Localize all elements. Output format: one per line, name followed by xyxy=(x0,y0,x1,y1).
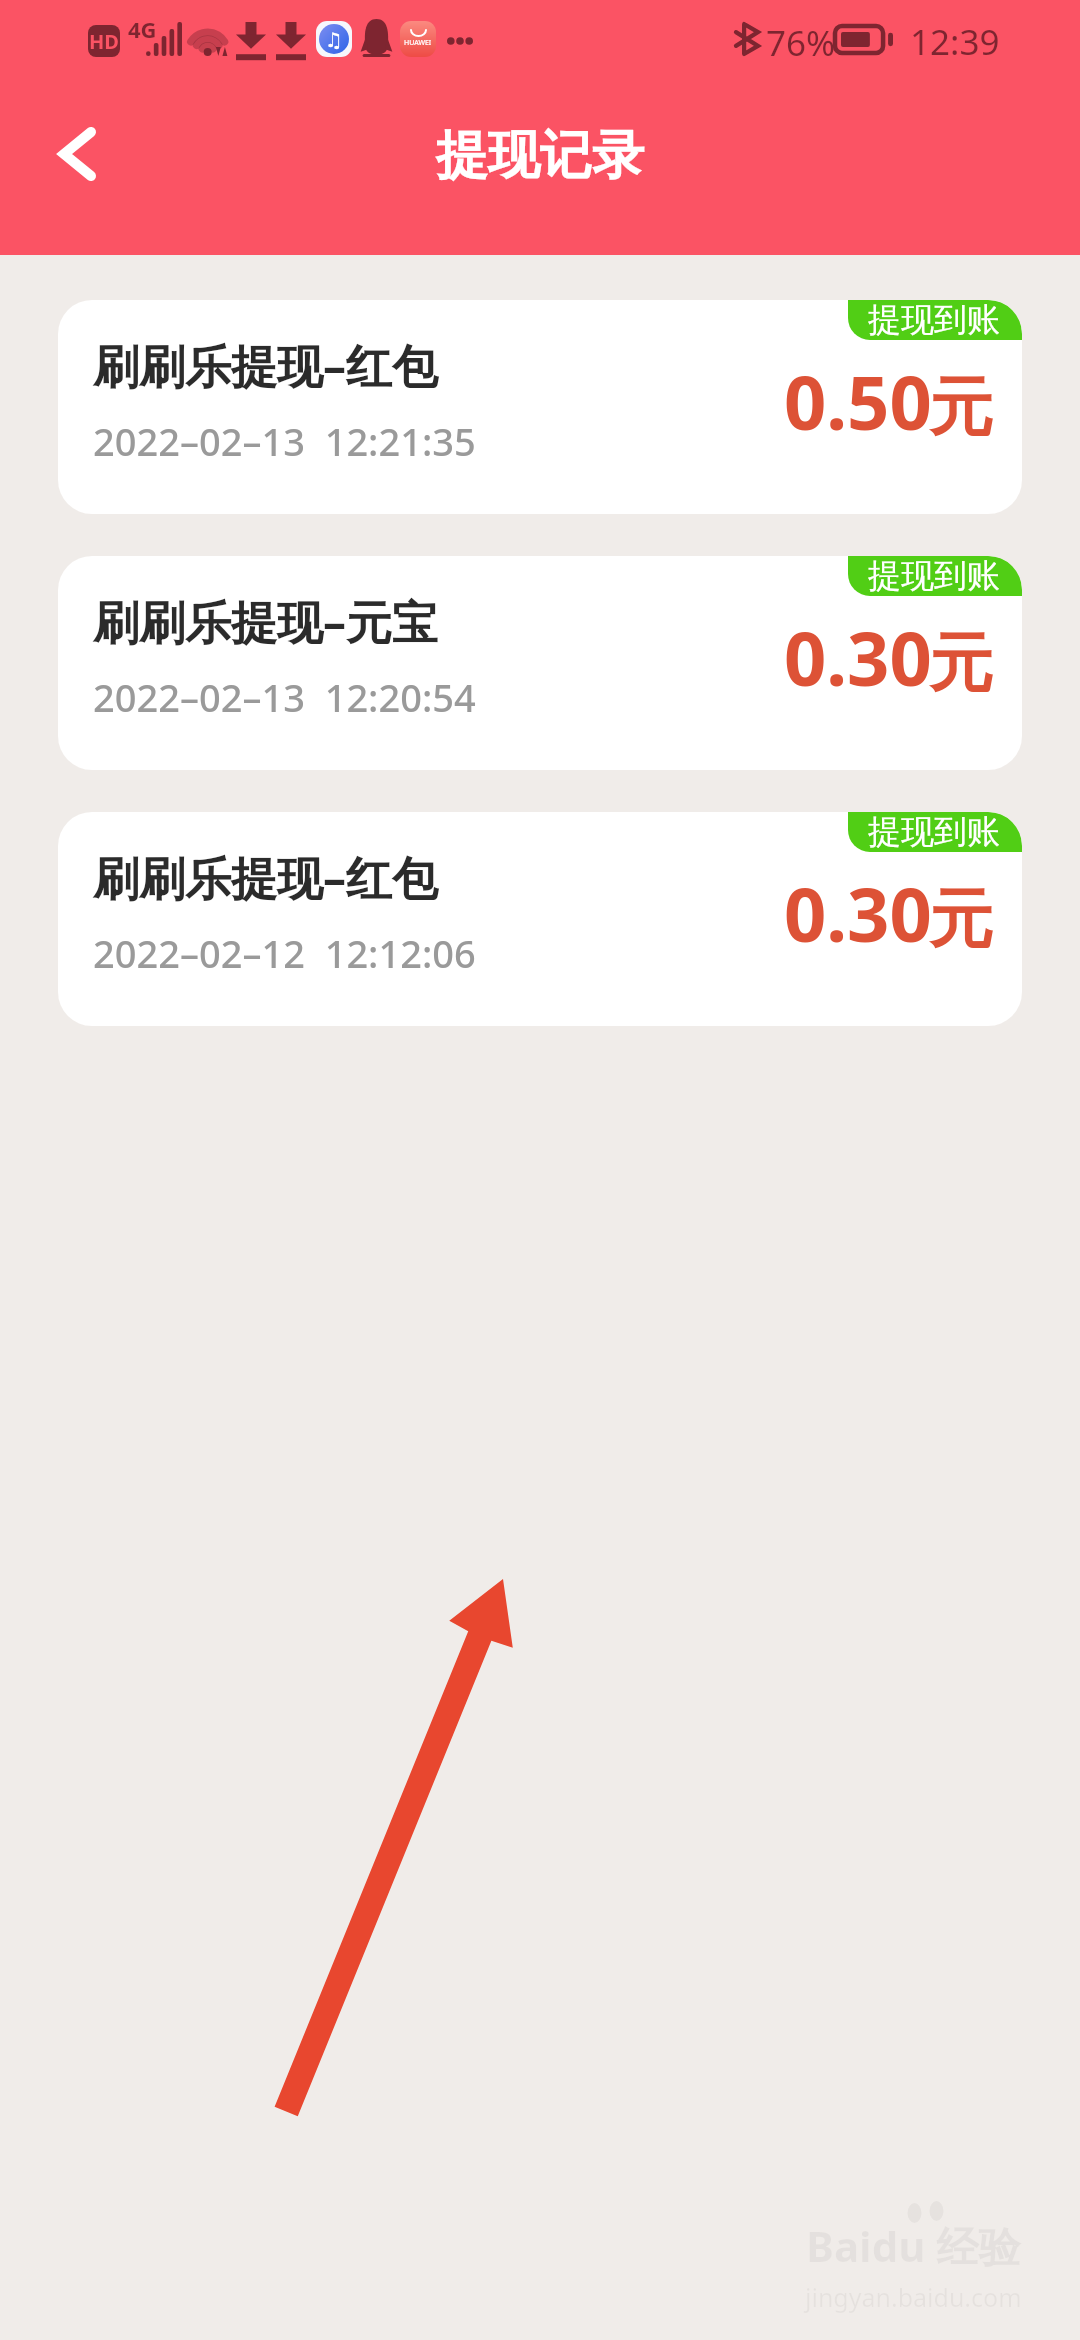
staticText: 提现记录 xyxy=(0,123,1080,189)
button[interactable]: Back xyxy=(20,104,130,204)
staticText: 元 xyxy=(929,367,993,448)
staticText: jingyan.baidu.com xyxy=(805,2280,1022,2314)
staticText: 刷刷乐提现–红包 xyxy=(93,846,438,909)
staticText: 0.30 xyxy=(784,607,932,708)
staticText: Baidu 经验 xyxy=(806,2217,1021,2274)
button[interactable]: 提现到账 xyxy=(58,300,1022,514)
staticText: 76% xyxy=(766,19,836,67)
staticText: HUAWEI xyxy=(404,38,432,48)
staticText: 2022–02–13 12:20:54 xyxy=(93,671,476,723)
staticText: HD xyxy=(89,28,119,55)
button[interactable]: 提现到账 xyxy=(58,812,1022,1026)
staticText: 2022–02–12 12:12:06 xyxy=(93,927,476,979)
staticText: 提现到账 xyxy=(868,556,1000,595)
staticText: 2022–02–13 12:21:35 xyxy=(93,415,476,467)
staticText: 0.30 xyxy=(784,863,932,964)
staticText: 元 xyxy=(929,879,993,960)
staticText: ♫ xyxy=(325,28,343,51)
button[interactable]: 提现到账 xyxy=(58,556,1022,770)
staticText: 12:39 xyxy=(910,18,1000,66)
staticText: 0.50 xyxy=(784,351,932,452)
staticText: 提现到账 xyxy=(868,812,1000,851)
staticText: 刷刷乐提现–元宝 xyxy=(93,590,438,653)
staticText: 元 xyxy=(929,623,993,704)
staticText: 刷刷乐提现–红包 xyxy=(93,334,438,397)
staticText: 4G xyxy=(128,14,157,44)
staticText: 提现到账 xyxy=(868,300,1000,339)
